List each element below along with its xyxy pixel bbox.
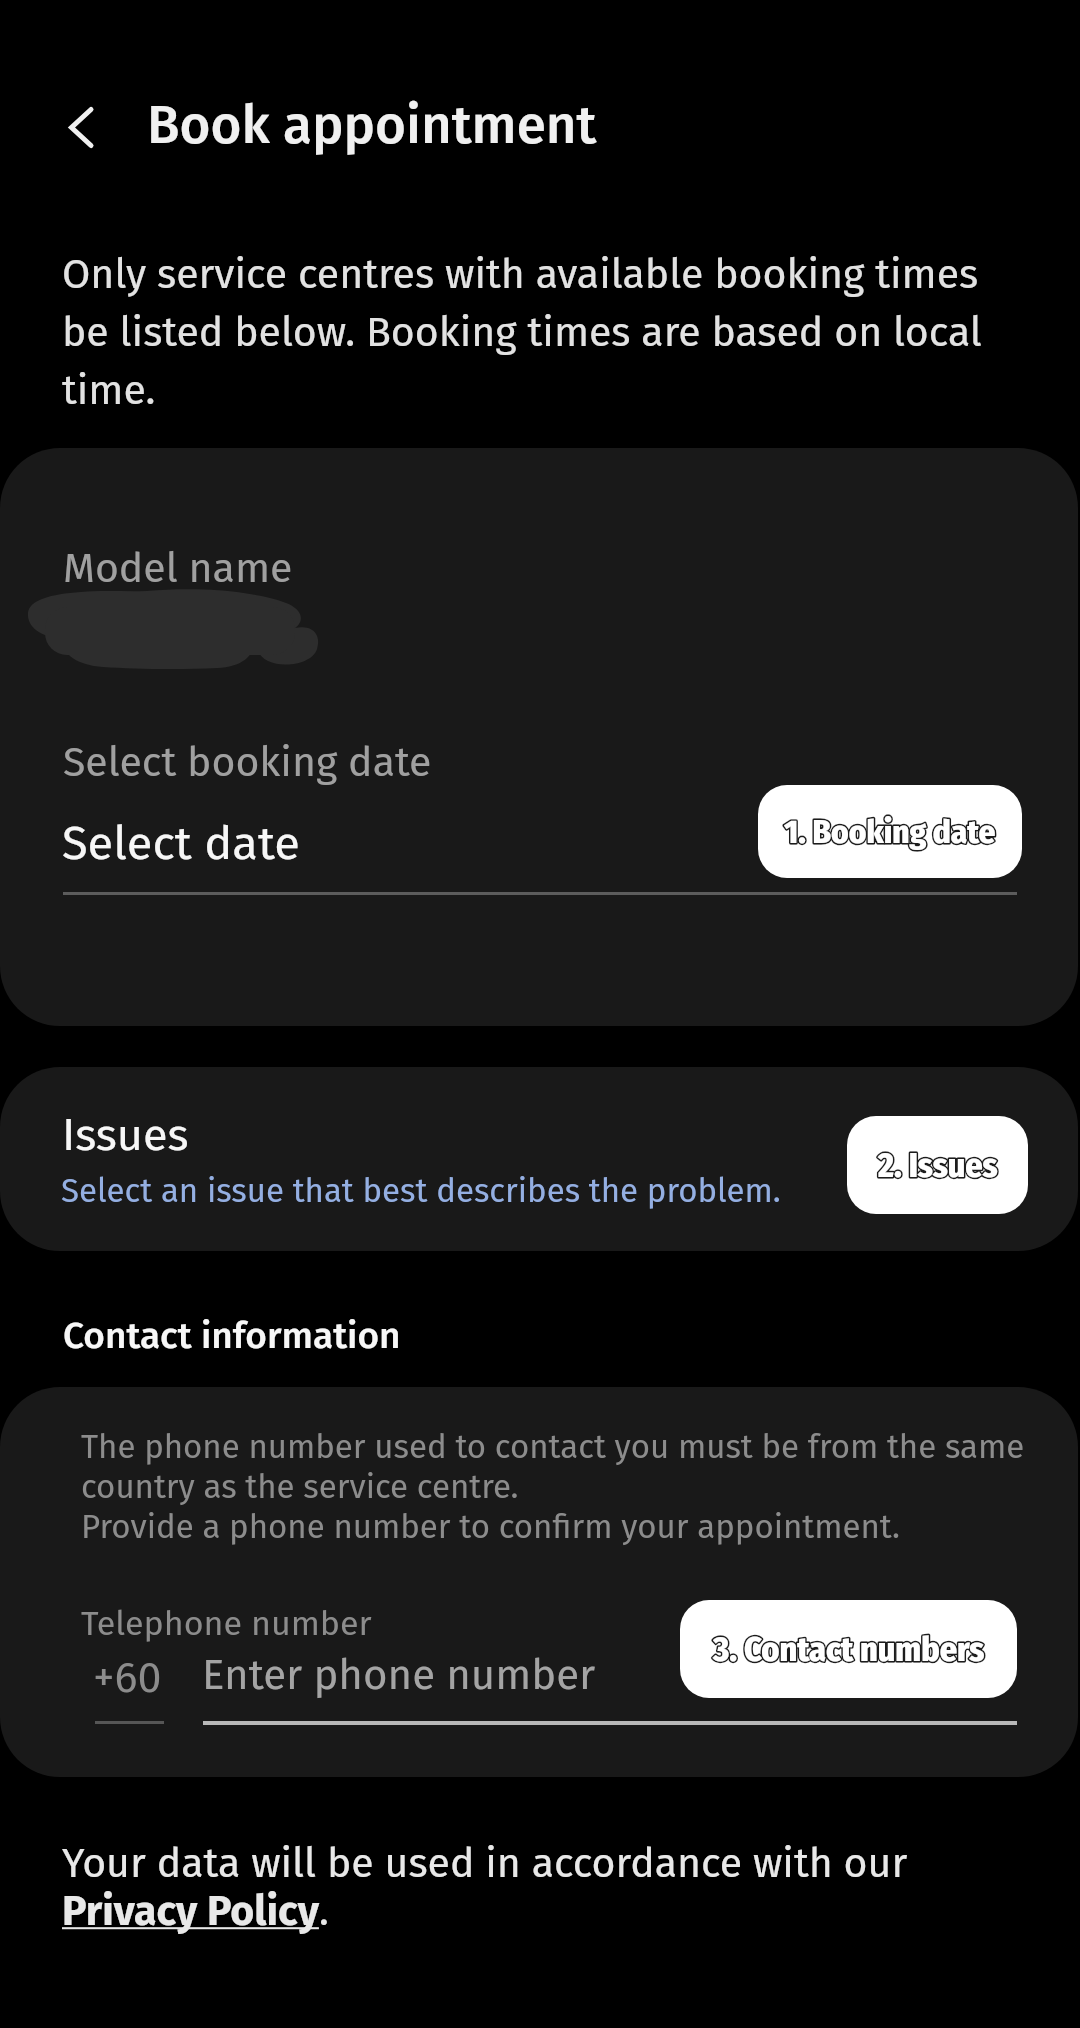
staticText: 2. Issues xyxy=(878,1145,998,1186)
staticText: 3. Contact numbers xyxy=(713,1629,985,1670)
staticText: Issues xyxy=(62,1108,189,1162)
button[interactable]: Select date xyxy=(63,800,1017,895)
staticText: Your data will be used in accordance wit… xyxy=(62,1839,908,1936)
staticText: Contact information xyxy=(63,1313,401,1357)
button[interactable]: Back xyxy=(37,92,109,164)
staticText: Enter phone number xyxy=(202,1650,596,1700)
staticText: 1. Booking date xyxy=(784,812,996,852)
staticText: Telephone number xyxy=(81,1603,372,1644)
staticText: Model name xyxy=(63,544,293,593)
staticText: The phone number used to contact you mus… xyxy=(81,1427,1071,1547)
button[interactable]: Issues xyxy=(0,1067,1078,1251)
staticText: +60 xyxy=(93,1652,162,1704)
staticText: Select date xyxy=(62,815,300,871)
staticText: Only service centres with available book… xyxy=(62,250,1002,415)
staticText: Select an issue that best describes the … xyxy=(61,1171,781,1211)
staticText: 1. Booking date xyxy=(784,812,996,852)
staticText: 3. Contact numbers xyxy=(713,1629,985,1670)
staticText: Book appointment xyxy=(147,93,597,157)
button[interactable]: Enter phone number xyxy=(203,1643,1017,1725)
staticText: Select booking date xyxy=(63,738,432,787)
button[interactable]: Privacy Policy xyxy=(62,1884,327,1940)
button[interactable]: 1. Booking date xyxy=(758,785,1022,878)
button[interactable]: 3. Contact numbers xyxy=(680,1600,1017,1698)
staticText: 2. Issues xyxy=(878,1145,998,1186)
button[interactable]: 2. Issues xyxy=(847,1116,1028,1214)
button[interactable]: +60 xyxy=(88,1643,170,1725)
